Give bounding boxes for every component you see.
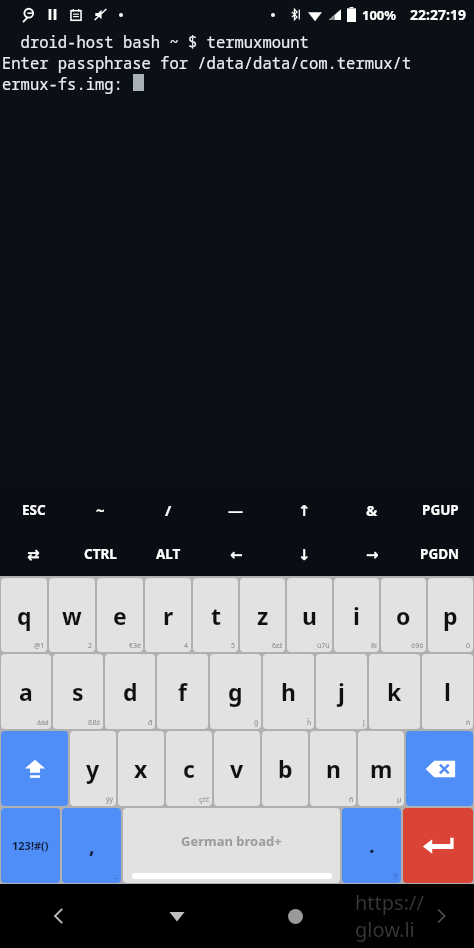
staticText: €3é	[129, 641, 141, 651]
button[interactable]: y	[70, 731, 116, 806]
staticText: 6zž	[272, 641, 283, 651]
staticText: 4	[184, 641, 189, 651]
staticText: PGUP	[422, 501, 459, 519]
button[interactable]: o	[381, 578, 426, 652]
staticText: µ	[397, 795, 402, 805]
button[interactable]: .	[342, 808, 401, 883]
staticText: v	[230, 753, 244, 784]
button[interactable]: v	[214, 731, 260, 806]
button[interactable]: Home	[236, 884, 355, 948]
staticText: .	[369, 832, 375, 859]
staticText: :;	[114, 872, 118, 882]
button[interactable]: l	[422, 654, 473, 729]
button[interactable]: x	[118, 731, 164, 806]
staticText: l	[444, 676, 451, 707]
staticText: CTRL	[84, 545, 117, 563]
staticText: https://glow.li	[355, 889, 474, 943]
button[interactable]: ,	[62, 808, 121, 883]
staticText: droid-host bash ~ $ termuxmount	[2, 31, 309, 52]
button[interactable]: ESC	[0, 488, 67, 532]
button[interactable]: PGUP	[406, 488, 474, 532]
button[interactable]: c	[166, 731, 212, 806]
button[interactable]: g	[210, 654, 261, 729]
button[interactable]: q	[1, 578, 47, 652]
button[interactable]: n	[310, 731, 356, 806]
button[interactable]: Enter	[403, 808, 473, 883]
button[interactable]: ↑	[270, 488, 338, 532]
staticText: ,	[89, 832, 95, 859]
button[interactable]: Back	[0, 884, 118, 948]
staticText: p	[443, 600, 458, 631]
button[interactable]: —	[202, 488, 270, 532]
staticText: j	[338, 676, 345, 707]
staticText: ñ	[349, 795, 354, 805]
button[interactable]: →	[338, 532, 406, 576]
staticText: i	[353, 600, 360, 631]
staticText: —	[228, 500, 244, 520]
button[interactable]: j	[316, 654, 367, 729]
staticText: ↑	[298, 502, 311, 519]
button[interactable]: e	[97, 578, 143, 652]
staticText: ermux-fs.img:	[2, 73, 133, 94]
staticText: 2	[88, 641, 93, 651]
button[interactable]: w	[49, 578, 95, 652]
button[interactable]: ~	[67, 488, 134, 532]
staticText: m	[370, 753, 393, 784]
staticText: n	[326, 753, 341, 784]
staticText: q	[17, 600, 32, 631]
button[interactable]: Shift	[1, 731, 68, 806]
staticText: t	[211, 600, 221, 631]
button[interactable]: t	[193, 578, 238, 652]
button[interactable]: f	[157, 654, 208, 729]
staticText: @1	[34, 641, 45, 651]
button[interactable]: Hide keyboard	[118, 884, 236, 948]
button[interactable]: i	[334, 578, 379, 652]
button[interactable]: z	[240, 578, 285, 652]
staticText: ESC	[22, 501, 46, 519]
button[interactable]: CTRL	[67, 532, 134, 576]
button[interactable]: b	[262, 731, 308, 806]
button[interactable]: a	[1, 654, 51, 729]
staticText: ú7ü	[317, 641, 330, 651]
staticText: c	[183, 753, 195, 784]
staticText: ö9ó	[411, 641, 424, 651]
staticText: 100%	[362, 6, 397, 24]
button[interactable]: u	[287, 578, 332, 652]
staticText: ~	[96, 500, 105, 520]
staticText: ?!	[393, 872, 398, 882]
button[interactable]: Recents	[355, 884, 474, 948]
staticText: çćč	[199, 795, 210, 805]
button[interactable]: r	[145, 578, 191, 652]
button[interactable]: /	[134, 488, 202, 532]
staticText: 5	[231, 641, 236, 651]
button[interactable]: ↓	[270, 532, 338, 576]
staticText: ←	[230, 546, 243, 563]
staticText: a	[19, 676, 33, 707]
staticText: 22:27:19	[410, 5, 466, 24]
staticText: o	[396, 600, 411, 631]
button[interactable]: ⇄	[0, 532, 67, 576]
staticText: ÿý	[106, 795, 114, 805]
button[interactable]: PGDN	[406, 532, 474, 576]
button[interactable]: d	[105, 654, 155, 729]
button[interactable]: &	[338, 488, 406, 532]
button[interactable]: s	[53, 654, 103, 729]
staticText: 8í	[371, 641, 377, 651]
staticText: y	[86, 753, 100, 784]
button[interactable]: German broad+	[123, 808, 340, 883]
staticText: r	[163, 600, 174, 631]
staticText: German broad+	[181, 832, 282, 850]
staticText: ĥ	[307, 718, 312, 728]
button[interactable]: p	[428, 578, 473, 652]
staticText: /	[165, 500, 172, 520]
staticText: g	[228, 676, 243, 707]
button[interactable]: ALT	[134, 532, 202, 576]
button[interactable]: k	[369, 654, 420, 729]
button[interactable]: h	[263, 654, 314, 729]
button[interactable]: m	[358, 731, 404, 806]
staticText: k	[387, 676, 402, 707]
staticText: đ	[148, 718, 153, 728]
button[interactable]: ←	[202, 532, 270, 576]
button[interactable]: Backspace	[406, 731, 473, 806]
button[interactable]: 123!#()	[1, 808, 60, 883]
